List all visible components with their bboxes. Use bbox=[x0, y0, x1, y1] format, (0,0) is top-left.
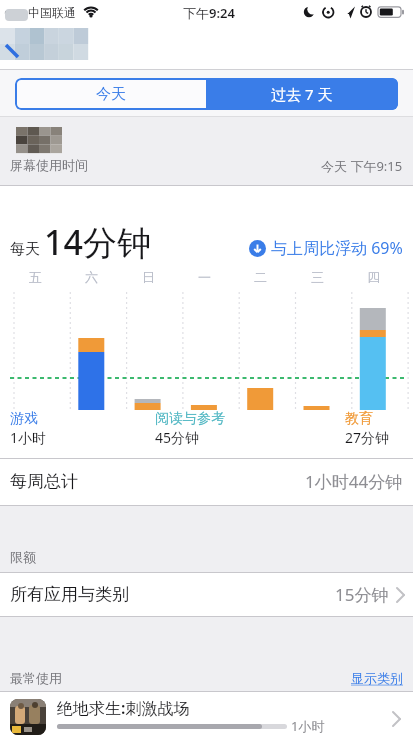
button[interactable]: 过去 7 天 bbox=[206, 78, 398, 110]
staticText: 中国联通 bbox=[28, 5, 76, 20]
staticText: 五 bbox=[29, 269, 42, 285]
staticText: 每天 bbox=[10, 240, 40, 259]
staticText: 今天 bbox=[96, 85, 126, 104]
staticText: 绝地求生:刺激战场 bbox=[57, 697, 190, 719]
staticText: 日 bbox=[142, 269, 155, 285]
staticText: 与上周比浮动 69% bbox=[271, 237, 403, 259]
button[interactable]: 每周总计 bbox=[0, 458, 413, 505]
staticText: 最常使用 bbox=[10, 670, 62, 686]
button[interactable]: 绝地求生:刺激战场 bbox=[0, 692, 413, 745]
staticText: 六 bbox=[85, 269, 98, 285]
staticText: 今天 下午9:15 bbox=[321, 157, 403, 175]
staticText: 45分钟 bbox=[155, 428, 200, 447]
staticText: 屏幕使用时间 bbox=[10, 157, 88, 173]
staticText: 一 bbox=[198, 269, 211, 285]
staticText: 每周总计 bbox=[10, 471, 78, 492]
button[interactable]: 今天 bbox=[15, 78, 206, 110]
staticText: 所有应用与类别 bbox=[10, 584, 129, 605]
button[interactable]: 显示类别 bbox=[351, 670, 403, 686]
button[interactable]: 所有应用与类别 bbox=[0, 572, 413, 617]
staticText: 1小时 bbox=[291, 717, 325, 735]
staticText: 阅读与参考 bbox=[155, 410, 225, 428]
staticText: 15分钟 bbox=[335, 583, 389, 606]
staticText: 下午9:24 bbox=[183, 4, 235, 22]
staticText: 限额 bbox=[10, 549, 36, 565]
staticText: 四 bbox=[367, 269, 380, 285]
staticText: 二 bbox=[254, 269, 267, 285]
staticText: 三 bbox=[311, 269, 324, 285]
staticText: 游戏 bbox=[10, 410, 38, 428]
staticText: 1小时 bbox=[10, 428, 47, 447]
staticText: 27分钟 bbox=[345, 428, 390, 447]
staticText: 14分钟 bbox=[44, 219, 151, 265]
staticText: 教育 bbox=[345, 410, 373, 428]
staticText: 1小时44分钟 bbox=[305, 470, 403, 493]
staticText: 过去 7 天 bbox=[271, 84, 333, 104]
